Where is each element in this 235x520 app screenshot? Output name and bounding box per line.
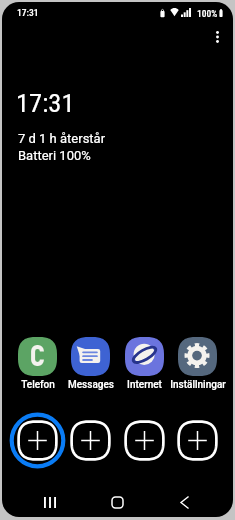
staticText: 17:31 [16, 87, 75, 118]
button[interactable]: 17:31 [18, 87, 106, 163]
staticText: Telefon [21, 379, 55, 391]
button[interactable]: Internet [118, 337, 171, 391]
button[interactable]: Messages [64, 337, 117, 391]
button[interactable]: Add home screen page [11, 414, 64, 467]
staticText: Internet [127, 379, 162, 391]
button[interactable]: Telefon [11, 337, 64, 391]
button[interactable]: Home [103, 488, 131, 516]
button[interactable]: Add home screen page [64, 414, 117, 467]
button[interactable]: Add home screen page [171, 414, 224, 467]
staticText: Batteri 100% [18, 148, 91, 163]
staticText: 100% [197, 8, 218, 19]
staticText: Inställningar [170, 379, 226, 391]
button[interactable]: Recents [36, 488, 64, 516]
button[interactable]: Add home screen page [118, 414, 171, 467]
staticText: 7 d 1 h återstår [18, 131, 106, 146]
staticText: Messages [68, 379, 114, 391]
button[interactable]: Inställningar [171, 337, 224, 391]
staticText: 17:31 [17, 7, 39, 18]
button[interactable]: More options [206, 26, 228, 48]
button[interactable]: Back [170, 488, 198, 516]
